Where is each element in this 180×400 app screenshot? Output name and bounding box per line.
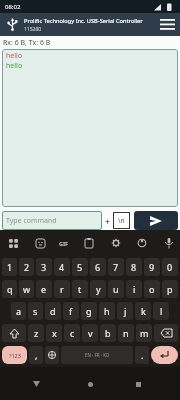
staticText: hello xyxy=(6,51,23,61)
button[interactable]: r xyxy=(54,280,70,298)
staticText: a xyxy=(16,305,22,317)
button[interactable]: 7 xyxy=(108,258,124,276)
button[interactable]: t xyxy=(72,280,88,298)
staticText: o xyxy=(149,283,155,295)
button[interactable]: u xyxy=(108,280,124,298)
staticText: k xyxy=(141,305,146,317)
button[interactable]: z xyxy=(28,324,44,342)
button[interactable]: 3 xyxy=(36,258,52,276)
staticText: e xyxy=(41,283,47,295)
button[interactable] xyxy=(134,211,178,230)
button[interactable]: \n xyxy=(113,212,130,229)
button[interactable]: 9 xyxy=(144,258,160,276)
staticText: 08:02 xyxy=(5,3,21,11)
staticText: . xyxy=(141,349,144,361)
button[interactable]: 6 xyxy=(90,258,106,276)
button[interactable]: x xyxy=(46,324,62,342)
button[interactable]: 8 xyxy=(126,258,142,276)
staticText: GIF xyxy=(59,240,69,247)
button[interactable] xyxy=(45,346,59,364)
button[interactable]: n xyxy=(118,324,134,342)
button[interactable]: y xyxy=(90,280,106,298)
button[interactable]: l xyxy=(153,302,169,320)
staticText: b xyxy=(105,327,111,339)
button[interactable]: w xyxy=(19,280,34,298)
staticText: 6 xyxy=(95,261,101,273)
staticText: f xyxy=(69,305,73,317)
staticText: t xyxy=(78,283,82,295)
button[interactable] xyxy=(33,236,47,250)
staticText: i xyxy=(133,283,136,295)
button[interactable]: 4 xyxy=(54,258,70,276)
staticText: u xyxy=(113,283,119,295)
button[interactable]: p xyxy=(162,280,178,298)
button[interactable] xyxy=(109,236,123,250)
button[interactable]: f xyxy=(63,302,79,320)
staticText: hello xyxy=(6,61,23,71)
button[interactable] xyxy=(82,376,98,392)
staticText: v xyxy=(88,327,93,339)
staticText: g xyxy=(86,305,92,317)
staticText: 4 xyxy=(59,261,65,273)
button[interactable] xyxy=(154,324,178,342)
staticText: c xyxy=(70,327,75,339)
staticText: m xyxy=(140,327,149,339)
staticText: 8 xyxy=(131,261,137,273)
staticText: ?123 xyxy=(9,352,21,359)
staticText: Rx: 6 B, Tx: 6 B xyxy=(3,38,51,48)
staticText: Type command xyxy=(6,216,57,226)
button[interactable]: s xyxy=(28,302,43,320)
button[interactable]: q xyxy=(2,280,17,298)
button[interactable]: 2 xyxy=(19,258,34,276)
button[interactable]: GIF xyxy=(59,236,69,250)
staticText: 3 xyxy=(41,261,47,273)
button[interactable]: v xyxy=(82,324,98,342)
staticText: r xyxy=(60,283,64,295)
staticText: + xyxy=(105,215,111,227)
staticText: , xyxy=(35,349,38,361)
button[interactable]: , xyxy=(29,346,43,364)
button[interactable]: 0 xyxy=(162,258,178,276)
button[interactable]: m xyxy=(136,324,152,342)
staticText: 0 xyxy=(167,261,173,273)
staticText: x xyxy=(52,327,57,339)
button[interactable] xyxy=(151,346,178,364)
button[interactable]: c xyxy=(64,324,80,342)
button[interactable]: a xyxy=(11,302,26,320)
button[interactable]: i xyxy=(126,280,142,298)
button[interactable]: b xyxy=(100,324,116,342)
button[interactable]: g xyxy=(81,302,97,320)
staticText: 1 xyxy=(7,261,13,273)
button[interactable]: h xyxy=(99,302,115,320)
button[interactable] xyxy=(130,376,146,392)
button[interactable]: e xyxy=(36,280,52,298)
staticText: z xyxy=(34,327,39,339)
staticText: 5 xyxy=(77,261,83,273)
button[interactable] xyxy=(2,324,26,342)
button[interactable] xyxy=(6,236,20,250)
button[interactable]: j xyxy=(117,302,133,320)
staticText: y xyxy=(96,283,101,295)
staticText: 2 xyxy=(24,261,30,273)
button[interactable] xyxy=(135,236,149,250)
staticText: n xyxy=(123,327,129,339)
button[interactable]: 5 xyxy=(72,258,88,276)
button[interactable]: o xyxy=(144,280,160,298)
staticText: 7 xyxy=(113,261,119,273)
button[interactable]: 1 xyxy=(2,258,17,276)
button[interactable]: ?123 xyxy=(2,346,27,364)
button[interactable]: . xyxy=(135,346,149,364)
button[interactable] xyxy=(154,13,180,36)
staticText: Prolific Technology Inc. USB-Serial Cont… xyxy=(24,17,143,25)
button[interactable] xyxy=(82,236,96,250)
button[interactable]: k xyxy=(135,302,151,320)
staticText: s xyxy=(33,305,38,317)
button[interactable]: Type command xyxy=(2,211,102,230)
button[interactable] xyxy=(28,376,44,392)
button[interactable]: d xyxy=(45,302,61,320)
staticText: 115200 xyxy=(24,26,42,33)
staticText: w xyxy=(23,283,31,295)
staticText: \n xyxy=(118,216,125,225)
button[interactable] xyxy=(162,236,176,250)
button[interactable]: EN · FR · KO xyxy=(61,346,133,364)
